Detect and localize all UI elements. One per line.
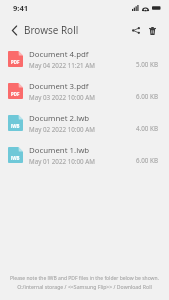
staticText: May 04 2022 11:21 AM bbox=[29, 61, 95, 70]
staticText: PDF bbox=[11, 59, 20, 65]
staticText: Document 3.pdf bbox=[29, 81, 89, 92]
staticText: 9:41 bbox=[13, 3, 29, 13]
staticText: Browse Roll bbox=[24, 23, 79, 37]
staticText: lWB bbox=[11, 155, 20, 161]
staticText: 6.00 KB bbox=[136, 156, 158, 165]
staticText: 5.00 KB bbox=[136, 60, 158, 69]
staticText: Documnet 2.lwb bbox=[29, 113, 90, 124]
button[interactable]: Share bbox=[126, 21, 145, 40]
staticText: PDF bbox=[11, 91, 20, 97]
button[interactable]: PDF bbox=[0, 43, 169, 75]
staticText: May 01 2022 10:00 AM bbox=[29, 157, 95, 166]
staticText: O:/internal storage / <<Samsung Flip>> /… bbox=[17, 283, 152, 290]
button[interactable]: PDF bbox=[0, 75, 169, 107]
staticText: Document 4.pdf bbox=[29, 49, 89, 60]
button[interactable]: lWB bbox=[0, 107, 169, 139]
staticText: Please note the lWB and PDF files in the… bbox=[10, 275, 159, 282]
staticText: lWB bbox=[11, 123, 20, 129]
button[interactable]: lWB bbox=[0, 139, 169, 171]
staticText: May 03 2022 10:00 AM bbox=[29, 93, 95, 102]
staticText: 4.00 KB bbox=[136, 124, 158, 133]
staticText: 6.00 KB bbox=[136, 92, 158, 101]
staticText: Document 1.lwb bbox=[29, 145, 90, 156]
button[interactable]: Back bbox=[5, 21, 24, 40]
button[interactable]: Delete bbox=[143, 21, 162, 40]
staticText: May 02 2022 10:00 AM bbox=[29, 125, 95, 134]
